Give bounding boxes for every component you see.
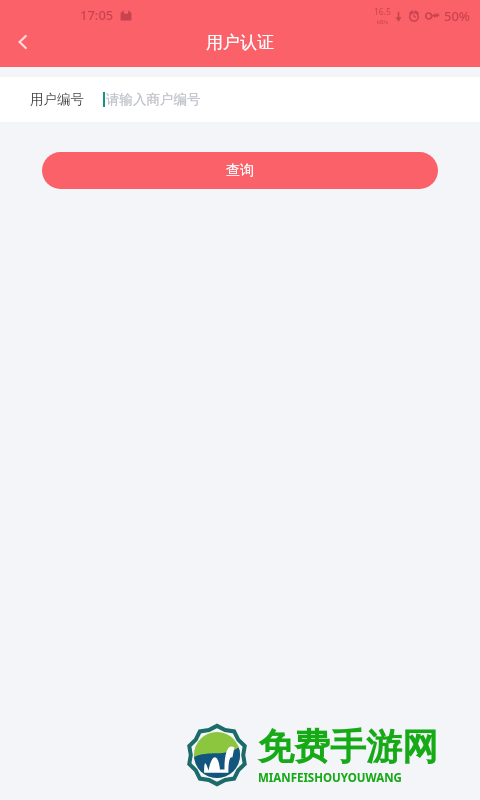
button[interactable]: 用户编号 <box>0 77 480 122</box>
staticText: 50% <box>444 7 470 25</box>
staticText: 查询 <box>226 162 254 180</box>
staticText: 免费手游网 <box>258 724 438 769</box>
staticText: 用户编号 <box>30 91 84 108</box>
button[interactable]: 查询 <box>42 152 438 189</box>
staticText: 17:05 <box>80 6 114 24</box>
staticText: kB/s <box>377 18 389 25</box>
button[interactable]: Back <box>0 19 46 65</box>
staticText: 用户认证 <box>206 32 274 53</box>
staticText: 请输入商户编号 <box>106 91 201 108</box>
staticText: 16.5 <box>374 6 391 18</box>
staticText: MIANFEISHOUYOUWANG <box>258 770 402 786</box>
